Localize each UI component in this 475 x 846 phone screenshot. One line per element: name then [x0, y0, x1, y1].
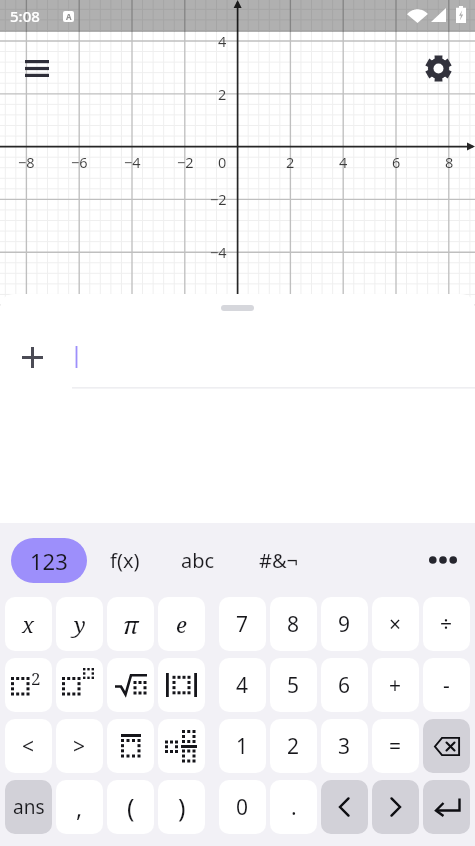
staticText: 123 [30, 546, 68, 576]
staticText: abc [181, 547, 215, 574]
button[interactable]: . [270, 780, 317, 834]
staticText: ÷ [440, 610, 453, 639]
staticText: −4 [210, 242, 227, 262]
staticText: 4 [236, 671, 249, 700]
staticText: #&¬ [259, 547, 298, 574]
button[interactable]: More options [414, 534, 471, 586]
button[interactable]: Menu [14, 45, 60, 91]
staticText: 2 [287, 732, 300, 761]
button[interactable]: 7 [219, 597, 266, 651]
button[interactable]: = [372, 719, 419, 773]
staticText: . [291, 793, 297, 822]
button[interactable] [158, 658, 205, 712]
staticText: 0 [218, 152, 227, 172]
staticText: × [389, 610, 402, 639]
button[interactable]: 123 [11, 538, 87, 583]
button[interactable]: ( [107, 780, 154, 834]
button[interactable] [107, 719, 154, 773]
button[interactable]: - [423, 658, 470, 712]
button[interactable]: Settings [415, 45, 462, 92]
staticText: −6 [71, 152, 88, 172]
staticText: ) [178, 790, 186, 824]
button[interactable]: Add expression [8, 333, 56, 381]
button[interactable]: 8 [270, 597, 317, 651]
staticText: 7 [236, 610, 249, 639]
button[interactable]: 3 [321, 719, 368, 773]
button[interactable]: ) [158, 780, 205, 834]
button[interactable]: ans [5, 780, 52, 834]
staticText: ans [13, 794, 45, 820]
button[interactable]: #&¬ [241, 534, 315, 586]
button[interactable]: × [372, 597, 419, 651]
staticText: 2 [31, 667, 41, 690]
button[interactable]: , [56, 780, 103, 834]
staticText: 8 [445, 152, 454, 172]
staticText: 1 [236, 732, 249, 761]
button[interactable] [372, 780, 419, 834]
button[interactable] [107, 658, 154, 712]
staticText: < [22, 732, 35, 761]
staticText: π [123, 608, 139, 641]
staticText: −4 [124, 152, 141, 172]
staticText: = [389, 732, 402, 761]
button[interactable] [72, 323, 475, 389]
staticText: f(x) [110, 547, 140, 574]
button[interactable]: 1 [219, 719, 266, 773]
staticText: > [73, 732, 86, 761]
staticText: 6 [392, 152, 401, 172]
staticText: - [443, 671, 450, 700]
staticText: + [389, 671, 402, 700]
staticText: 0 [236, 793, 249, 822]
staticText: x [22, 609, 35, 639]
staticText: ( [127, 790, 135, 824]
staticText: 3 [338, 732, 351, 761]
staticText: 5:08 [10, 6, 40, 26]
button[interactable]: 9 [321, 597, 368, 651]
button[interactable]: 6 [321, 658, 368, 712]
button[interactable]: e [158, 597, 205, 651]
button[interactable]: ÷ [423, 597, 470, 651]
staticText: 2 [286, 152, 295, 172]
button[interactable]: 0 [219, 780, 266, 834]
staticText: e [176, 609, 187, 639]
staticText: 4 [218, 31, 227, 51]
button[interactable]: abc [161, 534, 235, 586]
button[interactable] [56, 658, 103, 712]
button[interactable] [321, 780, 368, 834]
staticText: −2 [177, 152, 194, 172]
button[interactable]: < [5, 719, 52, 773]
staticText: y [74, 609, 86, 639]
staticText: A [66, 11, 72, 22]
staticText: 9 [338, 610, 351, 639]
button[interactable]: 5 [270, 658, 317, 712]
button[interactable]: 4 [219, 658, 266, 712]
button[interactable]: π [107, 597, 154, 651]
button[interactable] [423, 719, 470, 773]
staticText: 6 [338, 671, 351, 700]
button[interactable]: f(x) [88, 534, 162, 586]
staticText: −8 [18, 152, 35, 172]
button[interactable]: > [56, 719, 103, 773]
staticText: 8 [287, 610, 300, 639]
staticText: −2 [210, 189, 227, 209]
button[interactable] [158, 719, 205, 773]
staticText: 4 [339, 152, 348, 172]
button[interactable]: x [5, 597, 52, 651]
staticText: , [76, 792, 83, 823]
button[interactable]: + [372, 658, 419, 712]
button[interactable]: y [56, 597, 103, 651]
staticText: 5 [287, 671, 300, 700]
button[interactable]: 2 [270, 719, 317, 773]
button[interactable] [423, 780, 470, 834]
button[interactable]: 2 [5, 658, 52, 712]
staticText: 2 [218, 84, 227, 104]
